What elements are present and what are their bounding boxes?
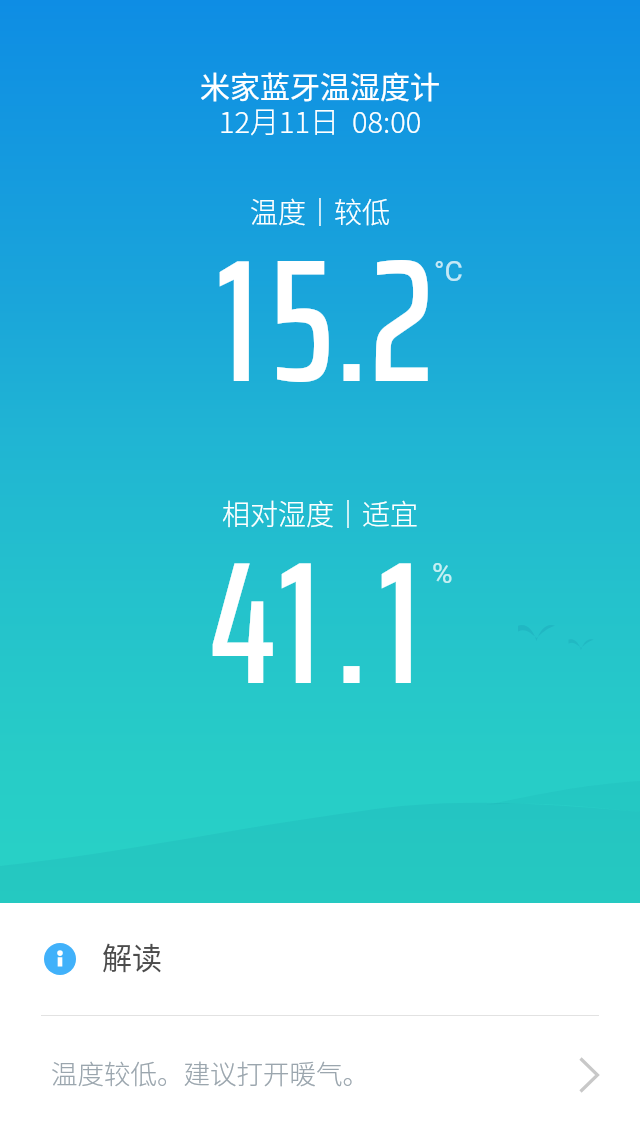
staticText: . (335, 184, 369, 458)
staticText: . (335, 486, 369, 760)
staticText: 温度较低。建议打开暖气。 (51, 1053, 564, 1091)
staticText: 温度｜较低 (250, 191, 391, 232)
staticText: 4 (209, 486, 277, 760)
button[interactable]: 温度较低。建议打开暖气。 (0, 1016, 640, 1136)
staticText: 1 (278, 486, 321, 760)
staticText: 解读 (102, 934, 162, 977)
staticText: 相对湿度｜适宜 (222, 493, 419, 534)
staticText: °C (434, 255, 463, 288)
staticText: % (432, 557, 453, 590)
staticText: 5 (270, 184, 334, 458)
staticText: 12月11日 08:00 (219, 99, 422, 141)
staticText: 2 (370, 184, 434, 458)
staticText: 米家蓝牙温湿度计 (200, 63, 440, 106)
staticText: 1 (378, 486, 421, 760)
staticText: 1 (216, 184, 259, 458)
other: More (564, 1058, 600, 1094)
button[interactable]: 解读 (0, 903, 640, 1015)
